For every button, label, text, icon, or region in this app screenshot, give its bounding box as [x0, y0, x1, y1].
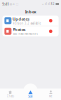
button[interactable]: Scan — [20, 88, 41, 100]
staticText: ⌁ ıl ıl — [42, 2, 50, 6]
staticText: Two new memories — [13, 32, 38, 36]
staticText: ◎ ▫ ⬚ — [10, 2, 19, 5]
staticText: Photos — [13, 27, 26, 32]
button[interactable]: Updates — [2, 16, 59, 26]
staticText: Me — [49, 94, 53, 98]
staticText: 9:41 — [2, 1, 9, 7]
button[interactable]: Me — [41, 88, 61, 100]
staticText: Inbox — [25, 9, 36, 14]
staticText: Updates — [13, 16, 30, 21]
staticText: Version 3.2 available — [13, 22, 42, 25]
button[interactable]: Chats — [0, 88, 20, 100]
staticText: 82 — [51, 2, 55, 6]
button[interactable]: Photos — [2, 26, 59, 36]
staticText: Scan — [28, 95, 33, 98]
staticText: Chats — [7, 94, 14, 98]
